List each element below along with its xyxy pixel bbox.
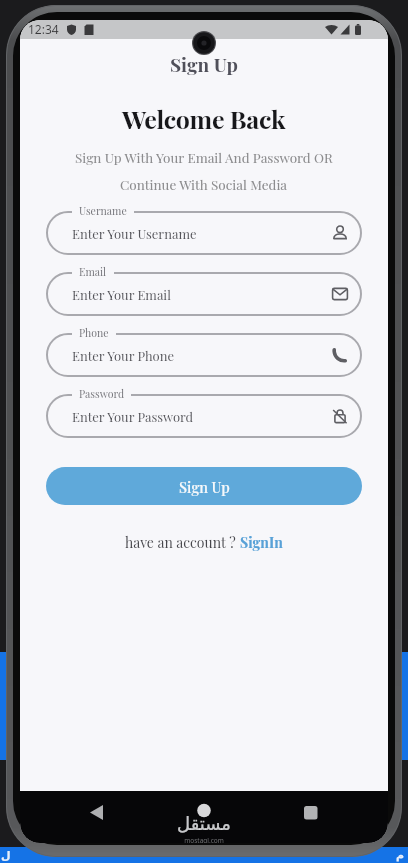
staticText: SignIn xyxy=(240,533,283,552)
staticText: Password xyxy=(79,387,124,401)
staticText: Sign Up xyxy=(179,477,230,496)
staticText: Enter Your Password xyxy=(72,408,194,425)
staticText: Enter Your Email xyxy=(72,286,171,303)
staticText: Welcome Back xyxy=(122,102,286,135)
staticText: Sign Up With Your Email And Password OR xyxy=(75,148,333,166)
staticText: Continue With Social Media xyxy=(120,175,288,193)
staticText: Sign Up xyxy=(170,51,238,76)
staticText: Enter Your Phone xyxy=(72,347,175,364)
staticText: م xyxy=(396,849,405,862)
staticText: Username xyxy=(79,204,127,218)
staticText: Phone xyxy=(79,326,109,340)
staticText: مستقل xyxy=(20,813,388,834)
staticText: ل xyxy=(1,849,11,862)
staticText: Email xyxy=(79,265,107,279)
staticText: Enter Your Username xyxy=(72,225,197,242)
staticText: mostaql.com xyxy=(20,836,388,843)
staticText: have an account ? xyxy=(125,533,240,552)
staticText: 12:34 xyxy=(28,21,59,37)
